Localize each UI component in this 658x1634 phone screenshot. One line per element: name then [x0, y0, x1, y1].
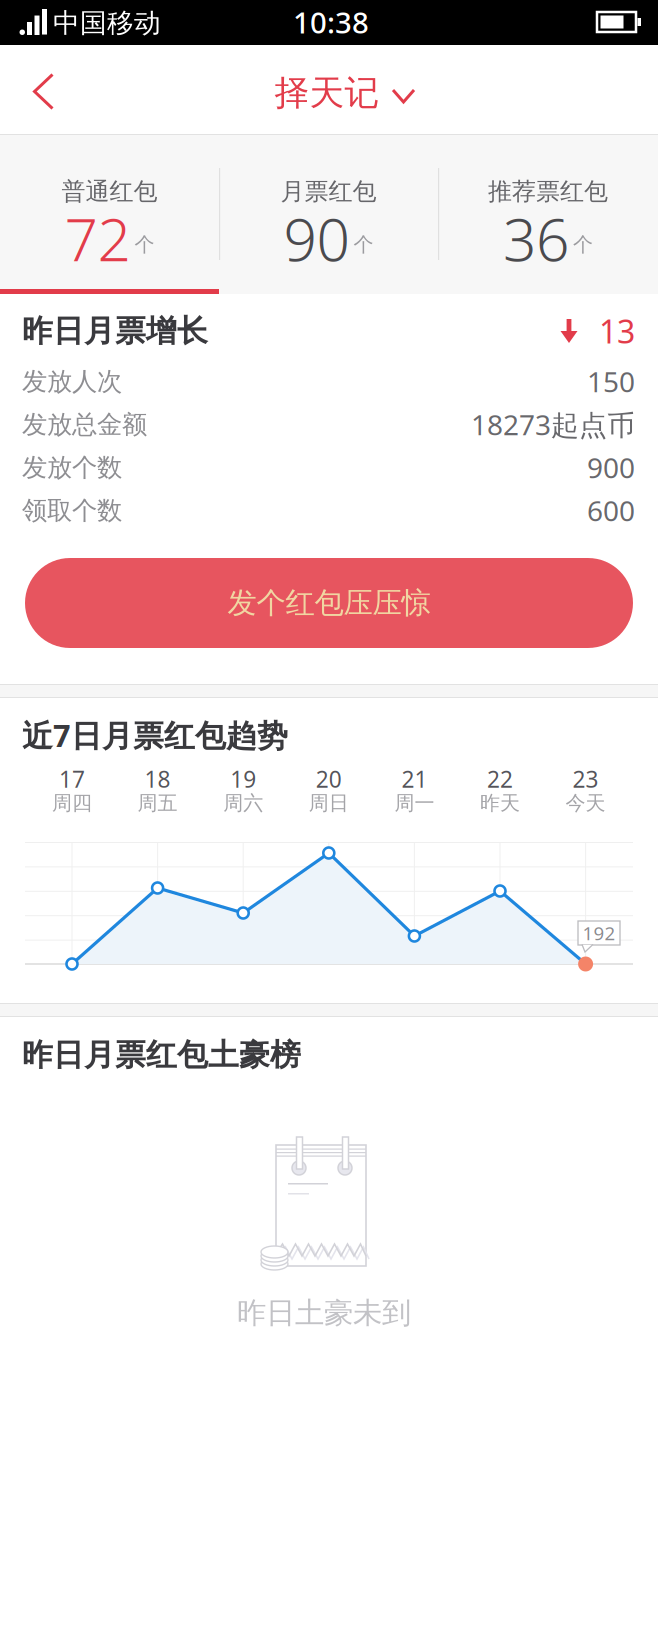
staticText: 月票红包	[280, 177, 376, 206]
staticText: 900	[587, 449, 635, 486]
button[interactable]: 发个红包压压惊	[25, 558, 633, 648]
staticText: 今天	[566, 791, 606, 815]
staticText: 周四	[52, 791, 92, 815]
button[interactable]: 推荐票红包	[438, 144, 658, 298]
staticText: 21	[401, 764, 427, 794]
staticText: 18273起点币	[471, 406, 635, 443]
staticText: 发放总金额	[22, 409, 147, 440]
staticText: 个	[134, 232, 154, 257]
staticText: 推荐票红包	[488, 177, 608, 206]
staticText: 13	[599, 310, 635, 352]
staticText: 90	[283, 199, 349, 277]
staticText: 72	[64, 199, 130, 277]
staticText: 17	[59, 764, 85, 794]
staticText: 领取个数	[22, 495, 122, 526]
staticText: 中国移动	[53, 7, 161, 39]
button[interactable]: 择天记	[274, 48, 415, 138]
staticText: 19	[230, 764, 256, 794]
staticText: 周日	[309, 791, 349, 815]
button[interactable]: 普通红包	[0, 144, 219, 298]
button[interactable]: Back	[0, 45, 90, 135]
staticText: 600	[587, 492, 635, 529]
staticText: 近7日月票红包趋势	[22, 715, 288, 755]
staticText: 18	[145, 764, 171, 794]
staticText: 22	[487, 764, 513, 794]
staticText: 36	[503, 199, 569, 277]
staticText: 昨日土豪未到	[237, 1295, 411, 1331]
staticText: 192	[582, 921, 615, 945]
staticText: 发个红包压压惊	[227, 585, 430, 621]
staticText: 23	[573, 764, 599, 794]
staticText: 个	[353, 232, 373, 257]
staticText: 20	[316, 764, 342, 794]
staticText: 昨日月票增长	[22, 312, 208, 350]
staticText: 150	[587, 363, 635, 400]
staticText: 周一	[394, 791, 434, 815]
staticText: 择天记	[274, 72, 379, 114]
staticText: 周六	[223, 791, 263, 815]
staticText: 普通红包	[61, 177, 157, 206]
staticText: 周五	[138, 791, 178, 815]
staticText: 昨天	[480, 791, 520, 815]
staticText: 昨日月票红包土豪榜	[22, 1036, 301, 1074]
button[interactable]: 月票红包	[219, 144, 438, 298]
staticText: 发放人次	[22, 366, 122, 397]
staticText: 10:38	[293, 2, 369, 41]
staticText: 个	[573, 232, 593, 257]
staticText: 发放个数	[22, 452, 122, 483]
